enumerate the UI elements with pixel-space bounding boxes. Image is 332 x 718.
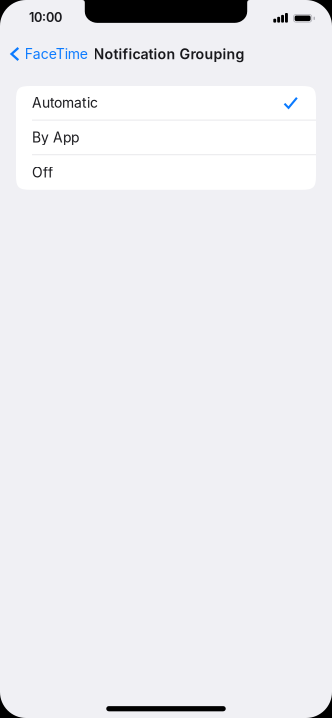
button[interactable]: Off [16,155,316,190]
staticText: By App [32,129,79,146]
staticText: Off [32,164,53,181]
staticText: FaceTime [25,45,88,62]
button[interactable]: Automatic [16,86,316,121]
button[interactable]: By App [16,121,316,155]
staticText: Automatic [32,94,98,111]
button[interactable]: FaceTime [0,38,96,70]
staticText: 10:00 [29,10,62,25]
staticText: Notification Grouping [93,45,244,62]
